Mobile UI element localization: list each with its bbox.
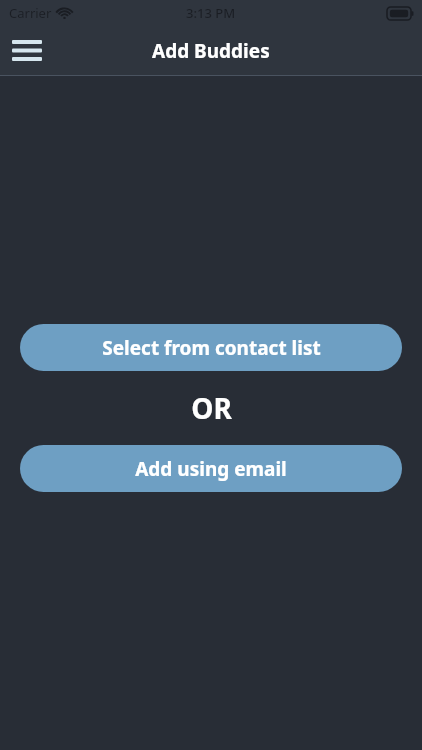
staticText: Add Buddies bbox=[152, 38, 270, 64]
staticText: Add using email bbox=[135, 456, 287, 482]
button[interactable]: Select from contact list bbox=[20, 324, 402, 371]
button[interactable]: Open navigation menu bbox=[0, 26, 54, 75]
staticText: Select from contact list bbox=[102, 335, 321, 361]
button[interactable]: Add using email bbox=[20, 445, 402, 492]
staticText: Carrier bbox=[9, 4, 52, 22]
staticText: 3:13 PM bbox=[186, 4, 236, 22]
staticText: OR bbox=[191, 389, 232, 427]
